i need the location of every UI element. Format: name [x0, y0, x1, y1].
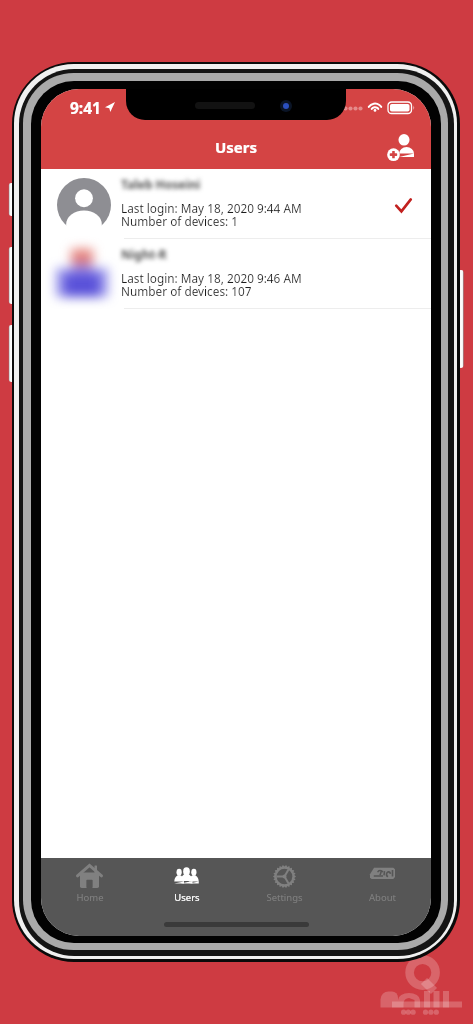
staticText: Users — [215, 137, 258, 157]
staticText: Last login: May 18, 2020 9:46 AM — [121, 270, 302, 286]
button[interactable]: Settings — [235, 858, 333, 936]
staticText: Number of devices: 107 — [121, 283, 252, 299]
staticText: About — [369, 891, 396, 904]
staticText: Night-R — [121, 246, 167, 262]
staticText: Taleb Hoseini — [121, 176, 201, 192]
staticText: Number of devices: 1 — [121, 213, 239, 229]
staticText: 9:41 — [70, 97, 101, 118]
button[interactable]: About — [333, 858, 431, 936]
button[interactable]: Home — [41, 858, 138, 936]
button[interactable]: Taleb Hoseini — [41, 169, 431, 239]
staticText: Settings — [266, 891, 303, 904]
staticText: Users — [174, 891, 200, 904]
button[interactable]: Night-R — [41, 239, 431, 309]
staticText: Home — [76, 891, 104, 904]
button[interactable]: Users — [138, 858, 235, 936]
button[interactable]: Add user — [375, 126, 421, 166]
staticText: Last login: May 18, 2020 9:44 AM — [121, 200, 302, 216]
